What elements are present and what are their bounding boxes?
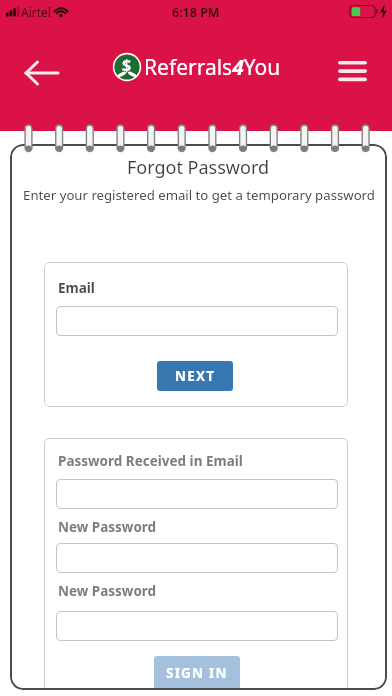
button[interactable]: NEXT [157, 361, 233, 391]
staticText: NEXT [175, 367, 216, 385]
button[interactable] [330, 50, 378, 92]
staticText: $ [122, 54, 132, 76]
button[interactable] [56, 611, 338, 641]
staticText: New Password [58, 582, 157, 600]
staticText: Forgot Password [127, 155, 270, 180]
staticText: New Password [58, 518, 157, 536]
staticText: Airtel [21, 4, 51, 20]
staticText: 6:18 PM [172, 4, 220, 21]
staticText: Email [58, 279, 95, 297]
button[interactable] [56, 306, 338, 336]
staticText: SIGN IN [166, 664, 228, 682]
staticText: Password Received in Email [58, 452, 243, 470]
button[interactable] [14, 50, 70, 94]
staticText: Enter your registered email to get a tem… [23, 186, 375, 204]
button[interactable] [56, 479, 338, 509]
button[interactable]: SIGN IN [154, 656, 240, 690]
staticText: Referrals4You [144, 53, 281, 82]
button[interactable] [56, 543, 338, 573]
